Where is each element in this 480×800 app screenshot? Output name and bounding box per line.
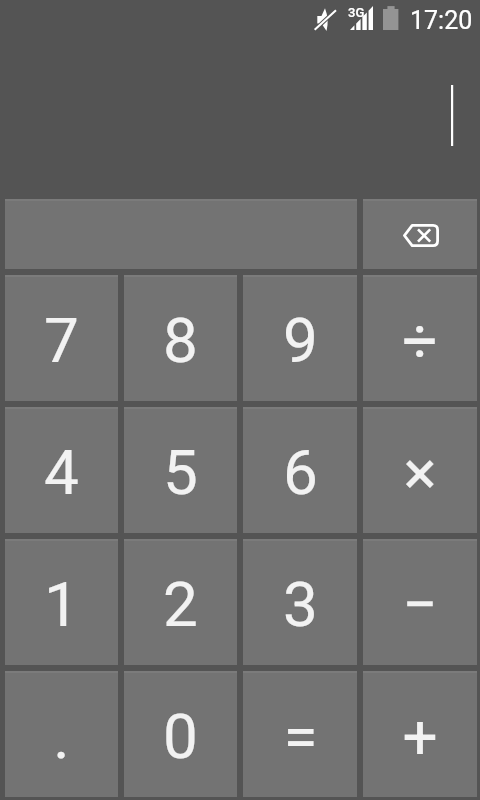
staticText: 6 xyxy=(283,436,318,509)
button[interactable]: 7 xyxy=(2,272,121,404)
staticText: 7 xyxy=(44,304,79,377)
button[interactable]: . xyxy=(2,668,121,800)
staticText: 3 xyxy=(283,568,318,641)
button[interactable]: 6 xyxy=(240,404,360,536)
button[interactable]: = xyxy=(240,668,360,800)
staticText: = xyxy=(283,700,318,773)
other: Sound off xyxy=(314,7,336,32)
staticText: 8 xyxy=(163,304,198,377)
button[interactable]: 9 xyxy=(240,272,360,404)
button[interactable]: − xyxy=(360,536,480,668)
button[interactable]: × xyxy=(360,404,480,536)
staticText: 1 xyxy=(44,568,79,641)
button[interactable]: Expression xyxy=(2,196,360,272)
staticText: × xyxy=(403,436,437,509)
button[interactable]: + xyxy=(360,668,480,800)
staticText: 4 xyxy=(44,436,79,509)
other: Battery xyxy=(383,6,399,30)
button[interactable]: 3 xyxy=(240,536,360,668)
staticText: ÷ xyxy=(402,304,438,377)
staticText: 9 xyxy=(283,304,318,377)
staticText: 3G xyxy=(348,5,365,20)
button[interactable]: 4 xyxy=(2,404,121,536)
staticText: . xyxy=(53,700,70,773)
button[interactable]: 8 xyxy=(121,272,240,404)
button[interactable]: 1 xyxy=(2,536,121,668)
other: 3G signal strength xyxy=(350,6,373,30)
staticText: − xyxy=(402,568,438,641)
staticText: 5 xyxy=(163,436,198,509)
button[interactable]: ÷ xyxy=(360,272,480,404)
staticText: 2 xyxy=(163,568,198,641)
staticText: 0 xyxy=(163,700,198,773)
staticText: + xyxy=(402,700,438,773)
staticText: 17:20 xyxy=(410,6,473,35)
button[interactable]: 0 xyxy=(121,668,240,800)
button[interactable]: 2 xyxy=(121,536,240,668)
button[interactable]: Delete xyxy=(360,196,480,272)
button[interactable]: 5 xyxy=(121,404,240,536)
